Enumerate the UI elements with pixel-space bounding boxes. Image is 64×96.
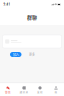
staticText: 群聊 bbox=[27, 13, 37, 21]
button[interactable]: 更多 bbox=[28, 52, 35, 56]
staticText: 通讯录 bbox=[19, 90, 28, 94]
button[interactable]: 我 bbox=[48, 85, 64, 96]
staticText: 我 bbox=[54, 90, 57, 94]
staticText: 9:41 bbox=[3, 3, 10, 6]
staticText: 发现 bbox=[37, 90, 43, 94]
staticText: 更多 bbox=[29, 52, 35, 57]
staticText: 加入 bbox=[13, 52, 19, 57]
button[interactable]: 通讯录 bbox=[16, 85, 32, 96]
button[interactable]: 发现 bbox=[32, 85, 48, 96]
staticText: 微信 bbox=[5, 90, 11, 94]
button[interactable]: 微信 bbox=[0, 85, 16, 96]
button[interactable]: 加入 bbox=[10, 52, 21, 57]
